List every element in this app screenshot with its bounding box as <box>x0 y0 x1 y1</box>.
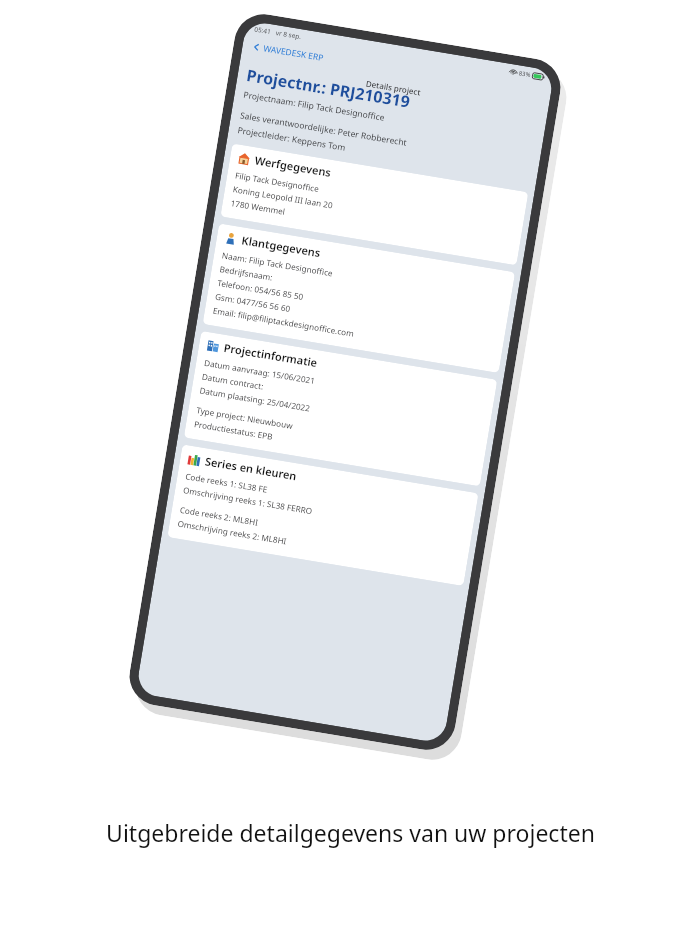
staticText: Naam: Filip Tack Designoffice <box>221 249 334 279</box>
staticText: Datum aanvraag: 15/06/2021 <box>203 357 317 386</box>
staticText: Email: filip@filiptackdesignoffice.com <box>212 304 355 339</box>
staticText: WAVEDESK ERP <box>262 42 324 64</box>
button[interactable]: Klantgegevens <box>203 223 515 373</box>
staticText: Klantgegevens <box>241 232 322 260</box>
staticText: Filip Tack Designoffice <box>234 169 320 194</box>
staticText: Type project: Nieuwbouw <box>196 404 294 431</box>
staticText: Projectinformatie <box>223 340 319 370</box>
staticText: Details project <box>365 77 422 97</box>
staticText: Projectnr.: PRJ210319 <box>245 64 412 113</box>
button[interactable]: Series en kleuren <box>167 444 479 586</box>
staticText: Bedrijfsnaam: <box>219 263 274 283</box>
staticText: 1780 Wemmel <box>230 197 286 217</box>
staticText: Productiestatus: EPB <box>193 418 274 442</box>
staticText: Sales verantwoordelijke: Peter Robberech… <box>239 109 408 149</box>
button[interactable]: Back <box>249 37 327 67</box>
staticText: Uitgebreide detailgegevens van uw projec… <box>106 817 595 848</box>
staticText: Datum plaatsing: 25/04/2022 <box>199 384 311 414</box>
staticText: Omschrijving reeks 1: SL38 FERRO <box>182 484 313 516</box>
staticText: Projectnaam: Filip Tack Designoffice <box>243 89 386 124</box>
staticText: Gsm: 0477/56 56 60 <box>214 291 291 314</box>
button[interactable]: Werfgegevens <box>220 143 528 265</box>
staticText: 83% <box>518 69 531 79</box>
staticText: Telefoon: 054/56 85 50 <box>217 277 304 302</box>
button[interactable]: Projectinformatie <box>184 331 497 486</box>
staticText: Datum contract: <box>201 371 265 392</box>
other: Back <box>252 42 261 52</box>
staticText: 05:41 vr 8 sep. <box>254 24 302 41</box>
staticText: Series en kleuren <box>204 453 298 483</box>
staticText: Werfgegevens <box>254 152 332 180</box>
staticText: Omschrijving reeks 2: ML8HI <box>177 518 288 547</box>
staticText: Code reeks 1: SL38 FE <box>185 470 268 495</box>
staticText: Projectleider: Keppens Tom <box>237 124 347 154</box>
staticText: Koning Leopold III laan 20 <box>232 183 334 210</box>
staticText: Code reeks 2: ML8HI <box>179 504 260 528</box>
